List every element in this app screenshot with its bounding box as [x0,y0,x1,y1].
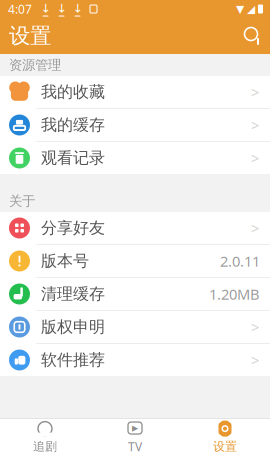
staticText: 我的收藏 [41,82,105,102]
button[interactable]: 我的缓存 [0,109,270,142]
button[interactable]: 版本号 [0,245,270,278]
staticText: > [251,115,259,135]
staticText: ↓ [56,1,66,15]
staticText: 设置 [9,23,51,49]
staticText: ▶ [132,423,138,433]
button[interactable]: 搜索 [236,18,270,54]
button[interactable]: 清理缓存 [0,278,270,311]
staticText: ◢ [247,3,255,15]
staticText: 追剧 [33,439,57,454]
staticText: 2.0.11 [220,251,260,271]
staticText: > [251,317,259,337]
staticText: 软件推荐 [41,350,105,370]
staticText: ↓ [72,1,82,15]
staticText: 版本号 [41,251,89,271]
button[interactable]: 分享好友 [0,212,270,245]
staticText: 版权申明 [41,317,105,337]
button[interactable]: 软件推荐 [0,344,270,376]
button[interactable]: ▶ [90,419,180,455]
staticText: ▼ [236,3,244,15]
staticText: > [251,218,259,238]
button[interactable]: 我的收藏 [0,76,270,109]
staticText: 清理缓存 [41,284,105,304]
staticText: 关于 [9,193,35,209]
staticText: > [251,350,259,370]
staticText: 资源管理 [9,57,61,73]
button[interactable]: 观看记录 [0,142,270,174]
staticText: > [251,82,259,102]
staticText: > [251,148,259,168]
staticText: TV [128,438,142,454]
staticText: 4:07 [8,1,32,17]
staticText: 1.20MB [209,284,260,304]
staticText: 设置 [213,439,237,454]
button[interactable]: 追剧 [0,419,90,455]
staticText: 分享好友 [41,218,105,238]
button[interactable]: 设置 [180,419,270,455]
staticText: 我的缓存 [41,115,105,135]
staticText: ↓ [40,1,50,15]
button[interactable]: 版权申明 [0,311,270,344]
staticText: 观看记录 [41,148,105,168]
